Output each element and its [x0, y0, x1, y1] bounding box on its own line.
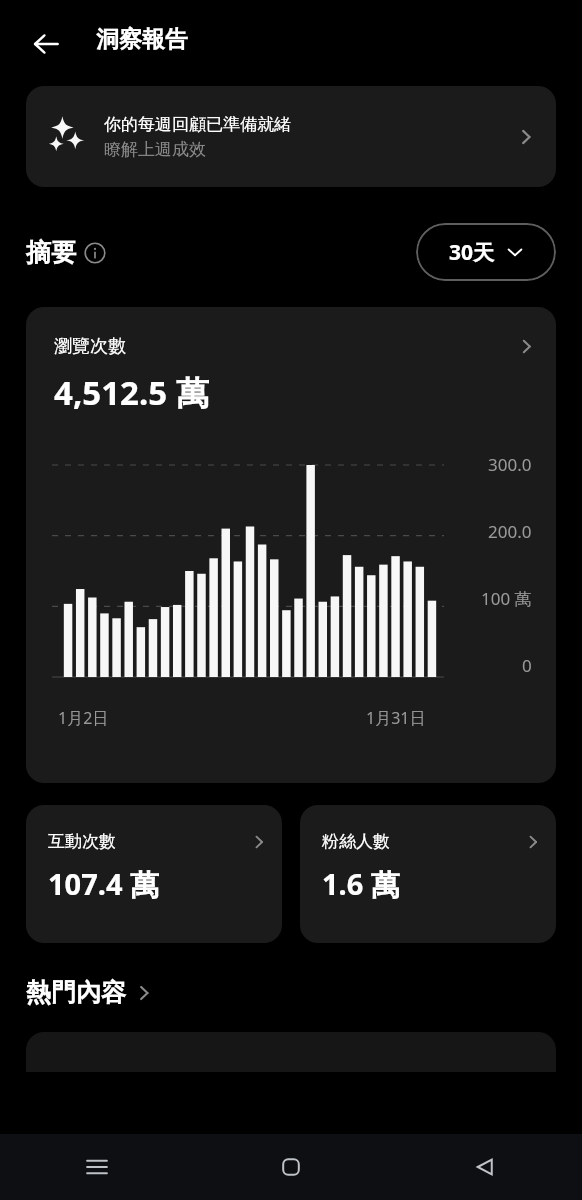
staticText: 互動次數 — [48, 831, 116, 852]
button[interactable]: Recents — [0, 1134, 194, 1200]
staticText: 熱門內容 — [26, 977, 126, 1008]
staticText: 30天 — [449, 238, 495, 267]
staticText: 1月31日 — [366, 707, 426, 729]
staticText: 200.0 — [488, 520, 532, 543]
staticText: 1月2日 — [58, 707, 109, 729]
button[interactable]: 互動次數 — [26, 805, 282, 943]
staticText: 0 — [522, 654, 532, 677]
button[interactable]: 30天 — [416, 223, 556, 281]
staticText: 100 萬 — [481, 587, 532, 610]
button[interactable]: 熱門內容 — [26, 977, 152, 1008]
staticText: 摘要 — [26, 237, 76, 268]
staticText: 瀏覽次數 — [54, 335, 126, 358]
staticText: 粉絲人數 — [322, 831, 390, 852]
button[interactable]: Back — [20, 18, 72, 70]
staticText: 你的每週回顧已準備就緒 — [104, 114, 291, 135]
staticText: 300.0 — [488, 453, 532, 476]
button[interactable]: 瀏覽次數 — [26, 307, 556, 783]
button[interactable]: Back — [388, 1134, 582, 1200]
button[interactable]: 粉絲人數 — [300, 805, 556, 943]
staticText: 4,512.5 萬 — [54, 370, 209, 415]
button[interactable]: Home — [194, 1134, 388, 1200]
staticText: 107.4 萬 — [48, 864, 160, 904]
button[interactable]: 你的每週回顧已準備就緒 — [26, 86, 556, 187]
staticText: 瞭解上週成效 — [104, 139, 206, 160]
staticText: 洞察報告 — [96, 25, 188, 54]
staticText: 1.6 萬 — [322, 864, 400, 904]
button[interactable]: 摘要 — [26, 237, 106, 268]
